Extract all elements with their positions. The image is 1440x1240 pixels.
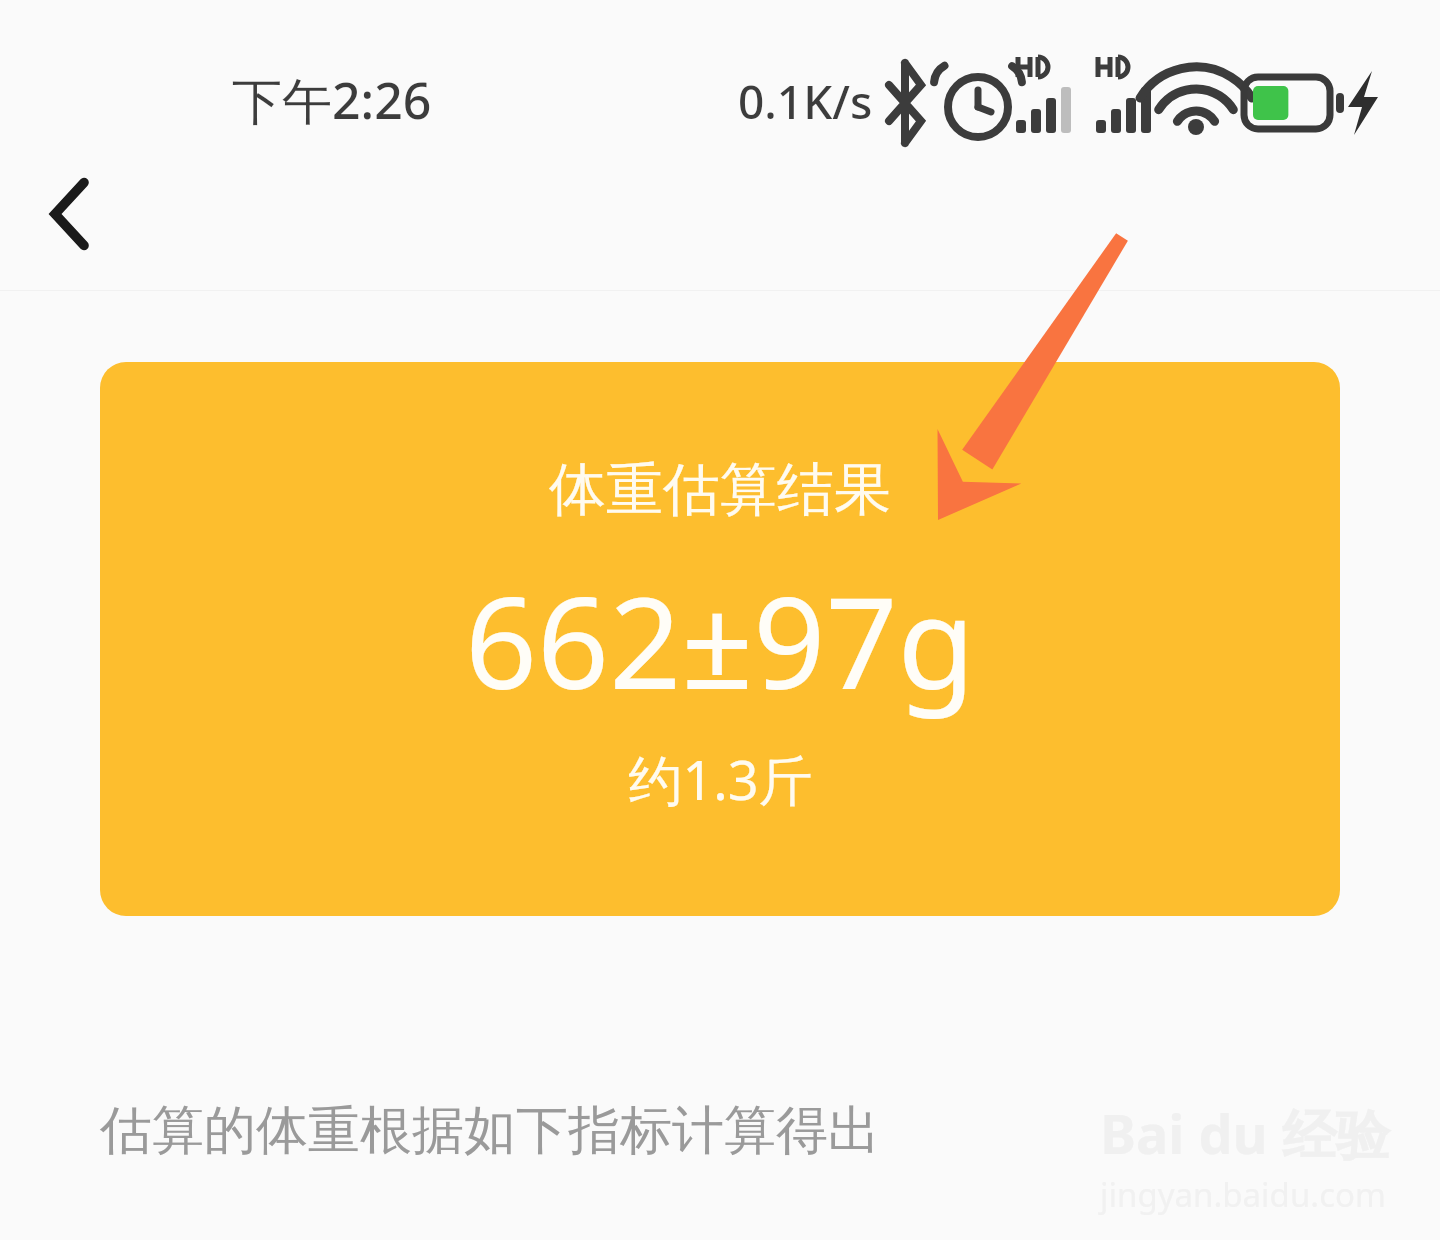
staticText: 约1.3斤 bbox=[628, 742, 813, 816]
staticText: 下午2:26 bbox=[232, 66, 432, 134]
staticText: 体重估算结果 bbox=[549, 454, 891, 526]
staticText: 662±97g bbox=[465, 554, 975, 726]
staticText: Bai du 经验 bbox=[1100, 1096, 1390, 1170]
staticText: 0.1K/s bbox=[738, 70, 873, 133]
button[interactable]: 体重估算结果 bbox=[100, 362, 1340, 916]
button[interactable]: 估算的体重根据如下指标计算得出 bbox=[100, 1098, 880, 1164]
staticText: 估算的体重根据如下指标计算得出 bbox=[100, 1098, 880, 1164]
button[interactable]: Back bbox=[14, 156, 126, 272]
staticText: jingyan.baidu.com bbox=[1100, 1172, 1386, 1217]
